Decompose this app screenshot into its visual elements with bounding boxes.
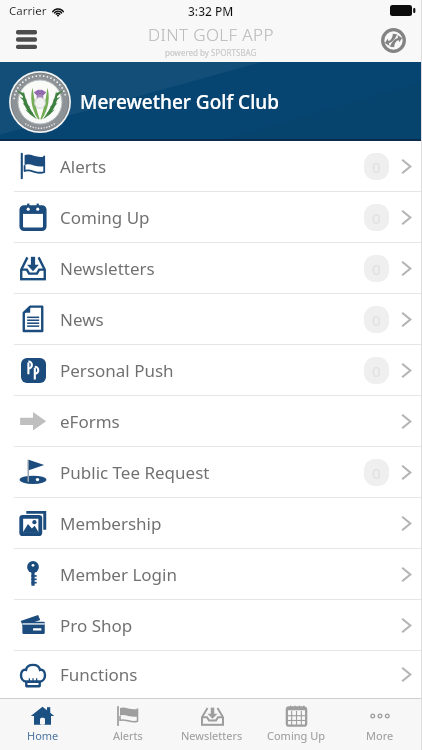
- button[interactable]: More: [338, 699, 422, 750]
- staticText: Alerts: [60, 155, 107, 178]
- staticText: 3:32 PM: [188, 3, 234, 19]
- staticText: 0: [372, 208, 381, 228]
- staticText: Personal Push: [60, 359, 174, 382]
- staticText: Merewether Golf Club: [80, 89, 280, 115]
- button[interactable]: Member Login: [0, 549, 422, 599]
- staticText: 0: [372, 259, 381, 279]
- button[interactable]: Newsletters: [170, 699, 254, 750]
- staticText: 0: [372, 463, 381, 483]
- button[interactable]: News: [0, 294, 422, 344]
- staticText: 0: [372, 310, 381, 330]
- staticText: News: [60, 308, 104, 331]
- staticText: Coming Up: [60, 206, 150, 229]
- button[interactable]: Pro Shop: [0, 600, 422, 650]
- staticText: 0: [372, 157, 381, 177]
- staticText: More: [366, 728, 394, 743]
- button[interactable]: Menu: [6, 19, 46, 59]
- button[interactable]: Personal Push: [0, 345, 422, 395]
- staticText: DINT GOLF APP: [148, 23, 274, 46]
- button[interactable]: Coming Up: [254, 699, 338, 750]
- staticText: Coming Up: [267, 728, 325, 743]
- staticText: Alerts: [113, 728, 143, 743]
- staticText: Member Login: [60, 563, 177, 586]
- staticText: Pro Shop: [60, 614, 133, 637]
- staticText: Functions: [60, 663, 138, 686]
- staticText: Carrier: [9, 3, 47, 19]
- button[interactable]: Alerts: [85, 699, 170, 750]
- button[interactable]: eForms: [0, 396, 422, 446]
- button[interactable]: Coming Up: [0, 192, 422, 242]
- button[interactable]: Alerts: [0, 141, 422, 191]
- staticText: eForms: [60, 410, 120, 433]
- staticText: Home: [27, 728, 59, 743]
- button[interactable]: Newsletters: [0, 243, 422, 293]
- staticText: Public Tee Request: [60, 461, 210, 484]
- staticText: Membership: [60, 512, 162, 535]
- button[interactable]: Home: [0, 699, 85, 750]
- staticText: powered by SPORTSBAG: [165, 47, 257, 58]
- button[interactable]: Functions: [0, 651, 422, 698]
- button[interactable]: Refresh: [376, 23, 410, 57]
- button[interactable]: Public Tee Request: [0, 447, 422, 497]
- staticText: 0: [372, 361, 381, 381]
- button[interactable]: Membership: [0, 498, 422, 548]
- staticText: Newsletters: [60, 257, 155, 280]
- staticText: Newsletters: [181, 728, 243, 743]
